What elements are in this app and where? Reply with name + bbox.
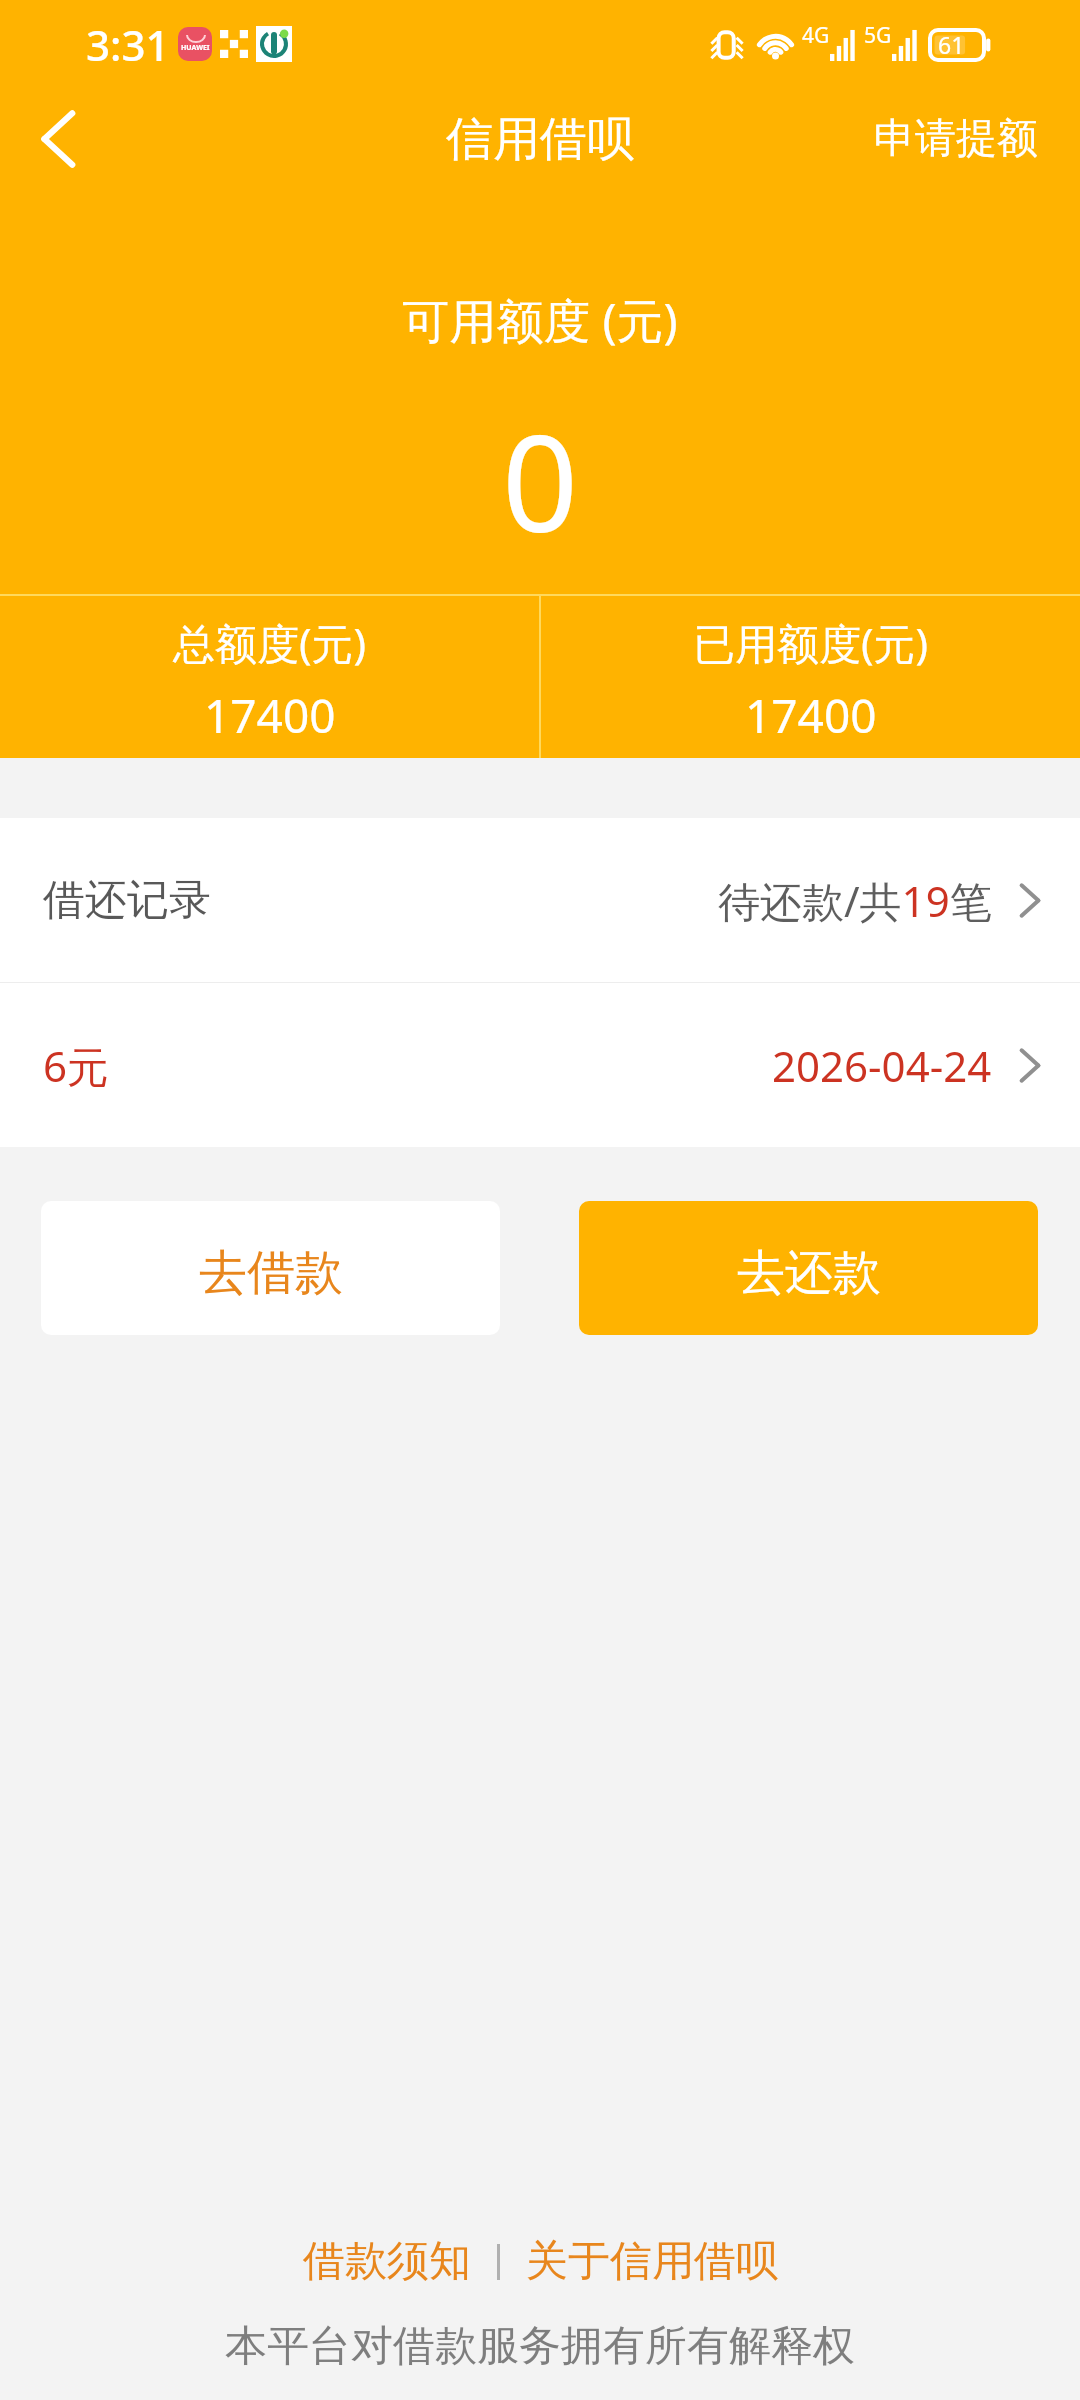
- staticText: 3:31: [86, 16, 170, 73]
- staticText: 待还款/共19笔: [718, 872, 992, 929]
- button[interactable]: 借款须知: [303, 2229, 471, 2294]
- staticText: 6元: [43, 1037, 110, 1094]
- button[interactable]: 关于信用借呗: [526, 2229, 778, 2294]
- staticText: 总额度(元): [173, 614, 367, 671]
- staticText: 信用借呗: [446, 110, 634, 169]
- button[interactable]: Back: [16, 97, 100, 181]
- staticText: 本平台对借款服务拥有所有解释权: [0, 2320, 1080, 2373]
- staticText: 去还款: [737, 1243, 881, 1303]
- staticText: 2026-04-24: [772, 1037, 992, 1094]
- button[interactable]: 借还记录: [0, 818, 1080, 982]
- button[interactable]: 去还款: [579, 1201, 1038, 1335]
- staticText: 关于信用借呗: [526, 2235, 778, 2288]
- staticText: 借还记录: [43, 874, 211, 927]
- staticText: 已用额度(元): [693, 614, 929, 671]
- staticText: HUAWEI: [181, 43, 210, 53]
- staticText: 4G: [802, 21, 830, 50]
- staticText: 0: [0, 390, 1080, 571]
- button[interactable]: 申请提额: [844, 95, 1080, 183]
- staticText: 5G: [864, 21, 892, 50]
- staticText: 申请提额: [874, 113, 1038, 165]
- button[interactable]: 6元: [0, 983, 1080, 1147]
- staticText: 61: [938, 29, 965, 60]
- staticText: 借款须知: [303, 2235, 471, 2288]
- staticText: 可用额度 (元): [0, 288, 1080, 352]
- staticText: 17400: [745, 684, 877, 747]
- staticText: 17400: [204, 684, 336, 747]
- staticText: 去借款: [199, 1243, 343, 1303]
- button[interactable]: 去借款: [41, 1201, 500, 1335]
